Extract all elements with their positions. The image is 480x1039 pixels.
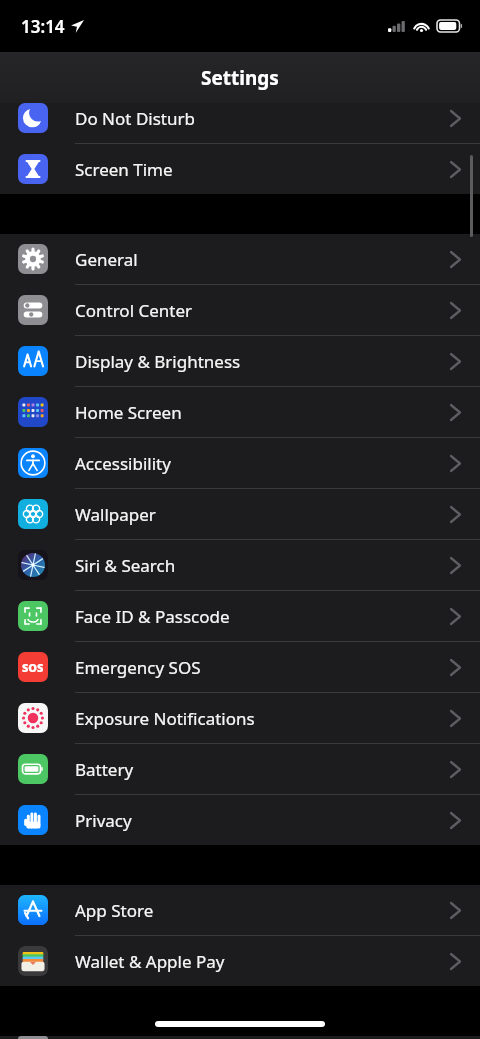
staticText: App Store xyxy=(75,899,154,922)
button[interactable]: Accessibility xyxy=(0,438,480,488)
staticText: Wallet & Apple Pay xyxy=(75,950,225,973)
button[interactable]: Siri & Search xyxy=(0,540,480,590)
staticText: Accessibility xyxy=(75,452,171,475)
staticText: General xyxy=(75,248,138,271)
button[interactable]: Display & Brightness xyxy=(0,336,480,386)
button[interactable]: App Store xyxy=(0,885,480,935)
button[interactable]: Control Center xyxy=(0,285,480,335)
staticText: Do Not Disturb xyxy=(75,107,195,130)
staticText: Screen Time xyxy=(75,158,173,181)
button[interactable]: SOS xyxy=(0,642,480,692)
staticText: Settings xyxy=(201,65,279,91)
staticText: Home Screen xyxy=(75,401,182,424)
staticText: Siri & Search xyxy=(75,554,176,577)
button[interactable]: Battery xyxy=(0,744,480,794)
staticText: Privacy xyxy=(75,809,132,832)
staticText: Face ID & Passcode xyxy=(75,605,230,628)
button[interactable]: Face ID & Passcode xyxy=(0,591,480,641)
staticText: Exposure Notifications xyxy=(75,707,255,730)
button[interactable]: General xyxy=(0,234,480,284)
button[interactable]: Do Not Disturb xyxy=(0,103,480,143)
button[interactable]: Wallpaper xyxy=(0,489,480,539)
staticText: Display & Brightness xyxy=(75,350,241,373)
staticText: SOS xyxy=(22,660,44,675)
staticText: Emergency SOS xyxy=(75,656,201,679)
button[interactable]: Wallet & Apple Pay xyxy=(0,936,480,986)
staticText: Battery xyxy=(75,758,134,781)
staticText: Control Center xyxy=(75,299,193,322)
button[interactable]: Exposure Notifications xyxy=(0,693,480,743)
button[interactable]: Privacy xyxy=(0,795,480,845)
staticText: 13:14 xyxy=(21,15,65,38)
staticText: Wallpaper xyxy=(75,503,156,526)
button[interactable]: Home Screen xyxy=(0,387,480,437)
button[interactable]: Screen Time xyxy=(0,144,480,194)
